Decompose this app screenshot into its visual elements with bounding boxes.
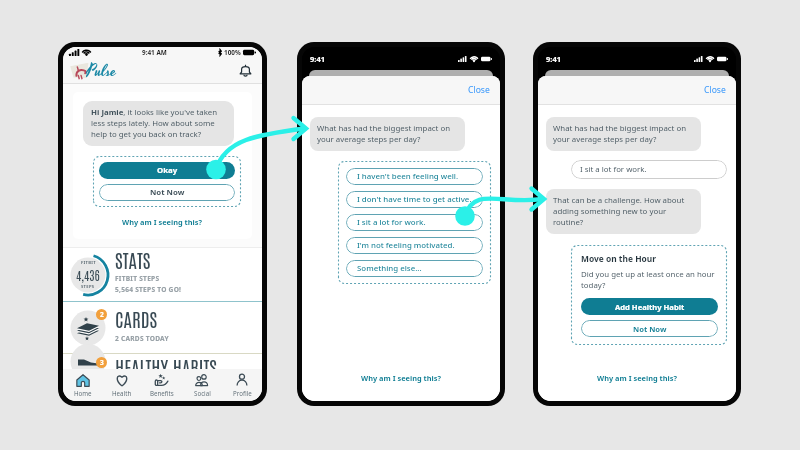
staticText: Something else...	[357, 263, 422, 274]
button[interactable]: Benefits	[142, 369, 182, 401]
staticText: 100%	[224, 48, 241, 57]
staticText: Add Healthy Habit	[615, 302, 685, 312]
staticText: HEALTHY HABITS	[115, 354, 217, 369]
staticText: STEPS	[81, 284, 95, 290]
staticText: What has had the biggest impact on your …	[553, 123, 687, 145]
staticText: Why am I seeing this?	[361, 373, 442, 383]
button[interactable]: Notifications	[238, 63, 253, 78]
staticText: 9:41	[310, 54, 325, 64]
staticText: Social	[194, 389, 211, 397]
staticText: Close	[704, 84, 726, 96]
button[interactable]: Add Healthy Habit	[581, 298, 718, 315]
button[interactable]: I don't have time to get active.	[346, 191, 483, 208]
staticText: Close	[468, 84, 490, 96]
button[interactable]: I haven't been feeling well.	[346, 168, 483, 185]
button[interactable]: Close	[702, 82, 728, 98]
button[interactable]: Social	[182, 369, 222, 401]
staticText: I haven't been feeling well.	[357, 171, 459, 182]
button[interactable]: Okay	[99, 162, 235, 179]
staticText: Why am I seeing this?	[597, 373, 678, 383]
button[interactable]: I sit a lot for work.	[346, 214, 483, 231]
button[interactable]: FITBIT	[63, 248, 262, 301]
button[interactable]: Home	[63, 369, 102, 401]
staticText: I don't have time to get active.	[357, 194, 472, 205]
staticText: Not Now	[150, 187, 185, 198]
button[interactable]: Health	[102, 369, 142, 401]
staticText: What has had the biggest impact on your …	[317, 123, 451, 145]
staticText: 2 CARDS TODAY	[115, 334, 169, 343]
staticText: CARDS	[115, 306, 158, 331]
staticText: Benefits	[150, 389, 174, 397]
button[interactable]: 3	[63, 354, 262, 369]
staticText: I sit a lot for work.	[357, 217, 426, 228]
staticText: FITBIT	[81, 260, 96, 266]
staticText: Hi Jamie, it looks like you've taken les…	[91, 107, 218, 140]
button[interactable]: Not Now	[581, 320, 718, 337]
staticText: 9:41 AM	[142, 48, 167, 57]
staticText: I'm not feeling motivated.	[357, 240, 455, 251]
staticText: 2	[100, 310, 104, 319]
button[interactable]: Close	[466, 82, 492, 98]
button[interactable]: Profile	[222, 369, 262, 401]
staticText: Health	[112, 389, 132, 397]
staticText: 3	[100, 358, 104, 367]
staticText: Did you get up at least once an hour tod…	[581, 269, 715, 291]
button[interactable]: Why am I seeing this?	[302, 373, 500, 383]
staticText: 4,436	[76, 267, 100, 283]
staticText: Profile	[233, 389, 252, 397]
staticText: Not Now	[633, 324, 667, 334]
button[interactable]: Why am I seeing this?	[83, 217, 242, 227]
staticText: FITBIT STEPS	[115, 274, 160, 283]
staticText: 5,564 STEPS TO GO!	[115, 285, 182, 294]
button[interactable]: I'm not feeling motivated.	[346, 237, 483, 254]
staticText: 9:41	[546, 54, 561, 64]
staticText: Okay	[157, 165, 178, 176]
button[interactable]: 2	[63, 302, 262, 353]
button[interactable]: Something else...	[346, 260, 483, 277]
staticText: Home	[74, 389, 92, 397]
staticText: I sit a lot for work.	[580, 164, 647, 175]
button[interactable]: Not Now	[99, 184, 235, 201]
staticText: Why am I seeing this?	[122, 217, 203, 227]
staticText: STATS	[115, 247, 151, 272]
staticText: Pulse	[86, 59, 117, 81]
staticText: Move on the Hour	[581, 253, 657, 264]
staticText: That can be a challenge. How about addin…	[553, 195, 685, 228]
button[interactable]: Why am I seeing this?	[538, 373, 736, 383]
